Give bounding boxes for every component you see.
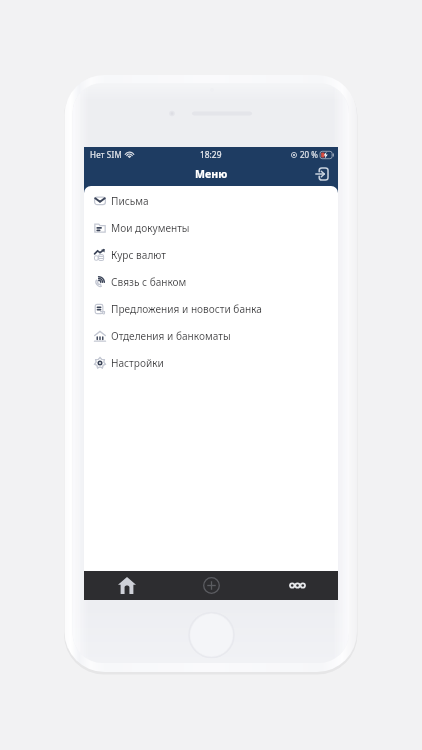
button[interactable]: Главная — [84, 571, 168, 600]
button[interactable]: Письма — [84, 187, 338, 214]
button[interactable]: Добавить — [168, 571, 253, 600]
staticText: Нет SIM — [90, 149, 122, 160]
staticText: Связь с банком — [111, 275, 187, 289]
button[interactable]: Отделения и банкоматы — [84, 322, 338, 349]
staticText: Мои документы — [111, 221, 190, 235]
button[interactable]: Связь с банком — [84, 268, 338, 295]
staticText: Письма — [111, 194, 149, 208]
staticText: Предложения и новости банка — [111, 302, 262, 316]
button[interactable]: Предложения и новости банка — [84, 295, 338, 322]
staticText: 18:29 — [200, 149, 222, 160]
button[interactable]: Выход — [311, 164, 331, 184]
button[interactable]: Курс валют — [84, 241, 338, 268]
staticText: Настройки — [111, 356, 164, 370]
button[interactable]: Ещё — [253, 571, 338, 600]
button[interactable]: Мои документы — [84, 214, 338, 241]
button[interactable]: Настройки — [84, 349, 338, 376]
staticText: Отделения и банкоматы — [111, 329, 231, 343]
staticText: 20 % — [300, 149, 318, 160]
staticText: Курс валют — [111, 248, 166, 262]
staticText: Меню — [195, 167, 228, 181]
